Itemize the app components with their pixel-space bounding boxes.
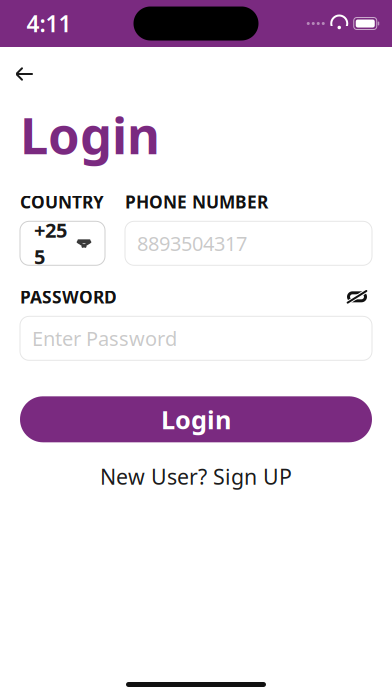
- staticText: Login: [161, 402, 231, 436]
- button[interactable]: New User? Sign UP: [20, 456, 372, 497]
- staticText: Login: [20, 101, 160, 168]
- button[interactable]: Country code +255: [20, 221, 105, 265]
- button[interactable]: 8893504317: [125, 221, 372, 265]
- staticText: PASSWORD: [20, 285, 117, 308]
- button[interactable]: Enter Password: [20, 316, 372, 360]
- button[interactable]: Back: [16, 57, 56, 91]
- staticText: New User? Sign UP: [100, 462, 292, 491]
- button[interactable]: Show password: [342, 286, 372, 308]
- staticText: Enter Password: [32, 325, 177, 352]
- staticText: +255: [34, 217, 67, 270]
- staticText: 8893504317: [137, 230, 247, 257]
- staticText: COUNTRY: [20, 190, 104, 213]
- button[interactable]: Login: [20, 396, 372, 442]
- staticText: PHONE NUMBER: [125, 190, 268, 213]
- staticText: 4:11: [26, 8, 71, 38]
